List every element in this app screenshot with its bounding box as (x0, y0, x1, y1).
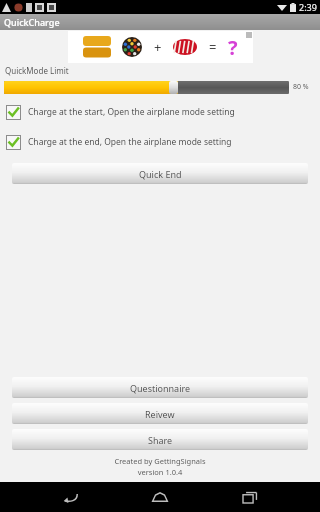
button[interactable]: Share (12, 429, 308, 450)
button[interactable]: Home (140, 482, 180, 512)
staticText: Charge at the end, Open the airplane mod… (28, 136, 232, 148)
button[interactable]: Charge at the start, Open the airplane m… (0, 99, 320, 125)
button[interactable]: 80 % (0, 79, 320, 95)
staticText: Questionnaire (130, 382, 191, 394)
staticText: = (209, 38, 217, 56)
staticText: Created by GettingSignals (0, 456, 320, 466)
button[interactable]: Quick End (12, 163, 308, 184)
staticText: Reivew (145, 408, 175, 420)
staticText: + (154, 38, 162, 56)
staticText: QuickMode Limit (5, 65, 69, 76)
staticText: ? (228, 34, 238, 61)
button[interactable]: Back (50, 482, 90, 512)
staticText: 2:39 (299, 1, 317, 13)
button[interactable]: Recent apps (230, 482, 270, 512)
staticText: QuickCharge (4, 16, 60, 28)
staticText: Share (148, 434, 173, 446)
staticText: version 1.0.4 (0, 467, 320, 477)
staticText: Charge at the start, Open the airplane m… (28, 106, 235, 118)
button[interactable]: Charge at the end, Open the airplane mod… (0, 129, 320, 155)
button[interactable]: Questionnaire (12, 377, 308, 398)
staticText: Quick End (139, 168, 182, 180)
staticText: 80 % (293, 82, 317, 92)
button[interactable]: Reivew (12, 403, 308, 424)
button[interactable]: Advertisement (68, 31, 253, 63)
